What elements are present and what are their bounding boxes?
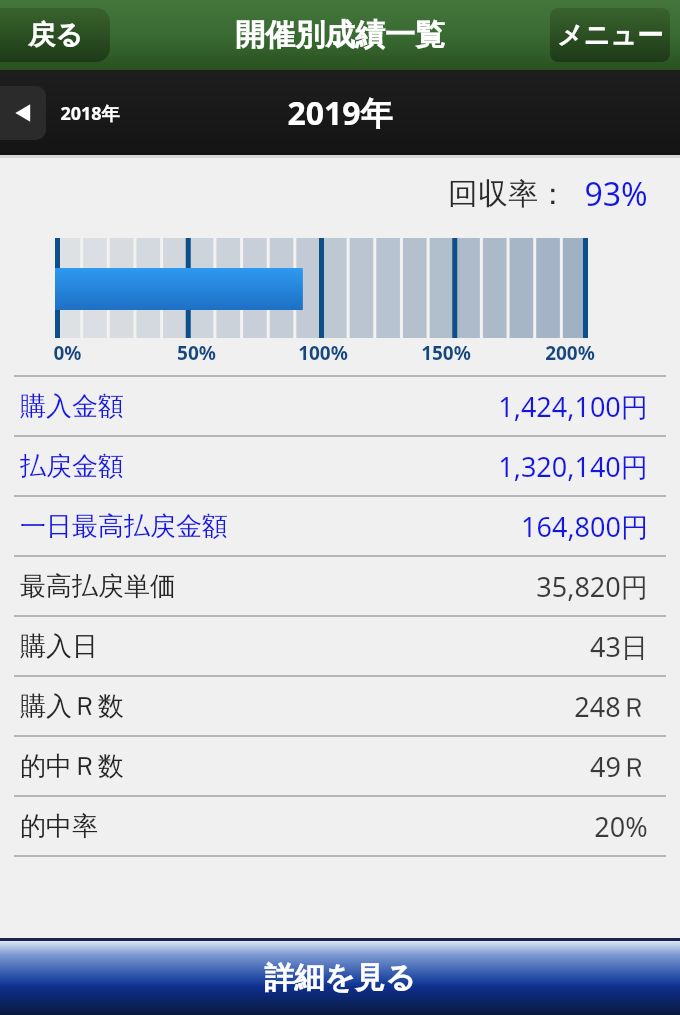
button[interactable]: 前の年 [0, 86, 46, 140]
button[interactable]: メニュー [550, 8, 670, 62]
staticText: 200% [545, 340, 595, 365]
staticText: 開催別成績一覧 [235, 16, 445, 54]
staticText: 購入金額 [20, 390, 124, 423]
staticText: 164,800円 [521, 508, 648, 545]
staticText: 35,820円 [536, 568, 648, 605]
staticText: 93% [584, 172, 648, 216]
staticText: 100% [298, 340, 348, 365]
staticText: 詳細を見る [264, 959, 416, 997]
staticText: 150% [421, 340, 471, 365]
staticText: 払戻金額 [20, 450, 124, 483]
staticText: 購入日 [20, 630, 98, 663]
button[interactable]: 購入Ｒ数 [0, 677, 680, 735]
staticText: 1,320,140円 [498, 448, 648, 485]
staticText: 2019年 [287, 91, 393, 135]
button[interactable]: 戻る [0, 8, 110, 62]
staticText: 購入Ｒ数 [20, 690, 124, 723]
staticText: 一日最高払戻金額 [20, 510, 228, 543]
button[interactable]: 購入日 [0, 617, 680, 675]
staticText: 20% [594, 808, 648, 845]
staticText: 50% [177, 340, 216, 365]
button[interactable]: 購入金額 [0, 377, 680, 435]
staticText: 的中率 [20, 810, 98, 843]
staticText: 的中Ｒ数 [20, 750, 124, 783]
button[interactable]: 払戻金額 [0, 437, 680, 495]
button[interactable]: 最高払戻単価 [0, 557, 680, 615]
staticText: 0% [53, 340, 82, 365]
staticText: 戻る [28, 18, 83, 52]
staticText: 1,424,100円 [498, 388, 648, 425]
staticText: メニュー [557, 19, 663, 52]
staticText: 49Ｒ [590, 748, 648, 785]
staticText: 43日 [590, 628, 648, 665]
staticText: 回収率： [448, 175, 568, 213]
staticText: 2018年 [60, 101, 120, 126]
button[interactable]: 一日最高払戻金額 [0, 497, 680, 555]
button[interactable]: 詳細を見る [0, 941, 680, 1015]
staticText: 最高払戻単価 [20, 570, 176, 603]
button[interactable]: 的中率 [0, 797, 680, 855]
button[interactable]: 的中Ｒ数 [0, 737, 680, 795]
staticText: 248Ｒ [574, 688, 648, 725]
